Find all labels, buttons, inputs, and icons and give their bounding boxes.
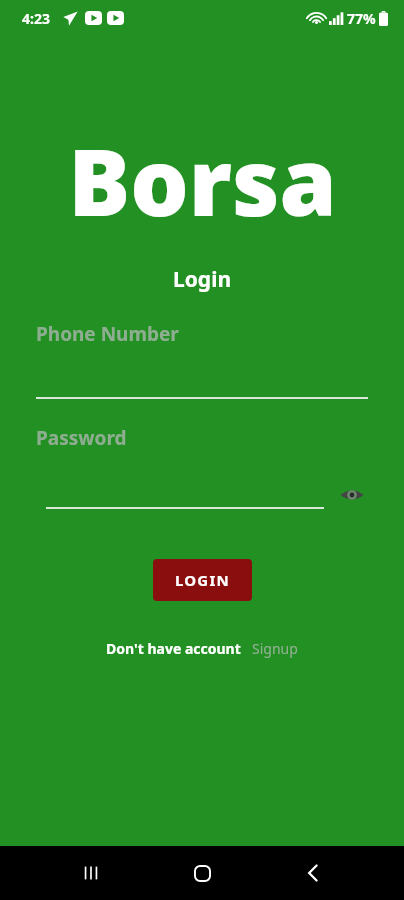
button[interactable]: Show password: [336, 479, 368, 511]
button[interactable]: Signup: [252, 639, 298, 658]
button[interactable]: Phone Number: [36, 321, 368, 399]
staticText: 77%: [347, 9, 376, 28]
button[interactable]: Home: [181, 852, 223, 894]
staticText: LOGIN: [175, 570, 230, 590]
staticText: 4:23: [22, 9, 50, 28]
button[interactable]: [46, 495, 324, 509]
button[interactable]: Back: [292, 852, 334, 894]
button[interactable]: Recent apps: [70, 852, 112, 894]
button[interactable]: Password: [36, 425, 127, 451]
staticText: Phone Number: [36, 321, 179, 347]
button[interactable]: LOGIN: [153, 559, 252, 601]
staticText: Signup: [252, 639, 298, 658]
staticText: Login: [173, 265, 232, 294]
staticText: Borsa: [68, 118, 337, 243]
staticText: Don't have account: [106, 639, 241, 658]
